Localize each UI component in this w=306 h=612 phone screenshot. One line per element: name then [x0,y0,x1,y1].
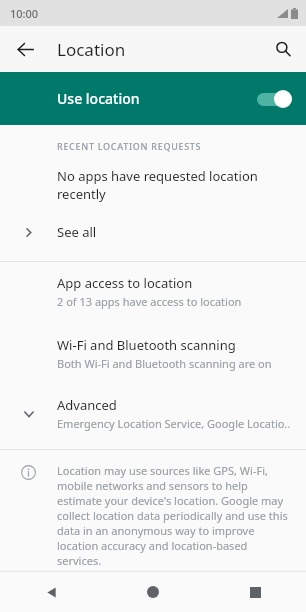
staticText: Wi-Fi and Bluetooth scanning [57,336,236,354]
button[interactable]: Wi-Fi and Bluetooth scanning [0,323,306,384]
staticText: Both Wi-Fi and Bluetooth scanning are on [57,356,272,371]
button[interactable]: No apps have requested location recently [0,155,306,213]
staticText: Advanced [57,396,117,414]
staticText: App access to location [57,274,193,292]
staticText: RECENT LOCATION REQUESTS [57,140,202,152]
staticText: Emergency Location Service, Google Locat… [57,416,291,431]
button[interactable]: App access to location [0,262,306,323]
button[interactable]: Recent apps [204,572,306,612]
staticText: 2 of 13 apps have access to location [57,294,242,309]
button[interactable]: Advanced [0,384,306,442]
staticText: 10:00 [10,6,39,21]
staticText: Location may use sources like GPS, Wi-Fi… [57,463,294,568]
button[interactable]: Use location [0,72,306,125]
button[interactable]: Search [267,33,299,65]
staticText: No apps have requested location recently [57,167,296,203]
staticText: See all [57,223,97,241]
staticText: Location [57,38,126,61]
staticText: Use location [57,89,140,108]
button[interactable]: Back [0,572,102,612]
button[interactable]: See all [0,213,306,251]
button[interactable]: Home [102,572,204,612]
button[interactable]: Navigate up [9,33,41,65]
